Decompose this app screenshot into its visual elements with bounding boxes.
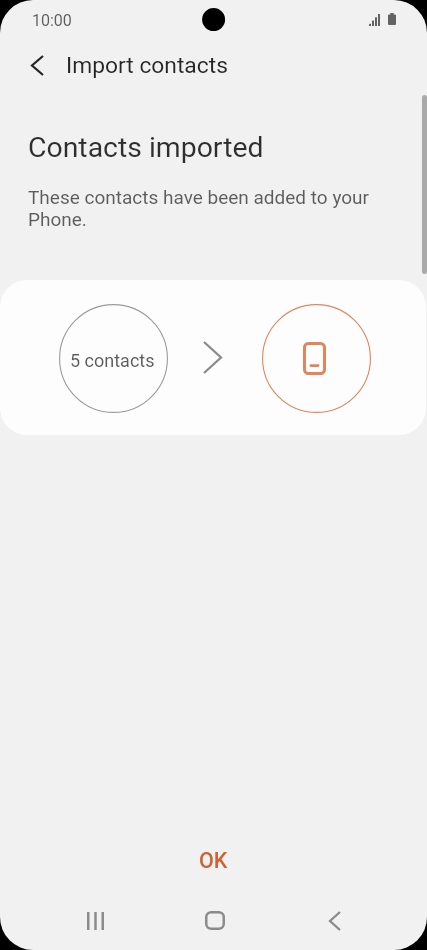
button[interactable]: Navigate up bbox=[15, 43, 59, 87]
staticText: These contacts have been added to your P… bbox=[28, 186, 380, 230]
staticText: 5 contacts bbox=[70, 350, 155, 371]
staticText: 10:00 bbox=[32, 11, 72, 30]
staticText: Contacts imported bbox=[28, 131, 264, 164]
button[interactable]: Home bbox=[167, 891, 262, 949]
button[interactable]: OK bbox=[143, 834, 284, 882]
button[interactable]: Back bbox=[286, 892, 381, 950]
staticText: Import contacts bbox=[66, 52, 228, 79]
button[interactable]: Recent apps bbox=[48, 892, 143, 950]
staticText: OK bbox=[199, 848, 228, 873]
